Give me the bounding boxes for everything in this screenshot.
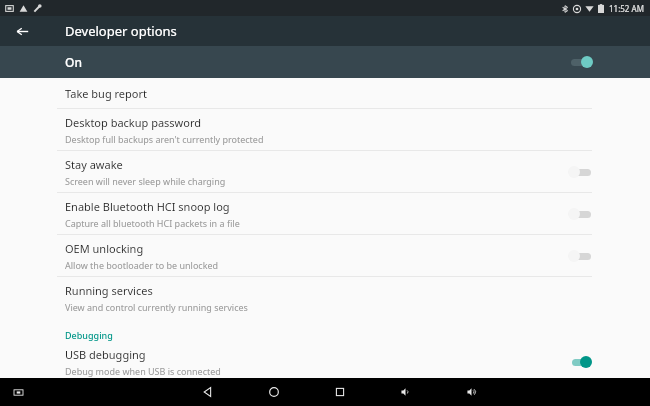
staticText: 11:52 AM — [609, 3, 644, 14]
button[interactable]: Back — [8, 17, 36, 45]
staticText: Debugging — [65, 329, 113, 341]
button[interactable]: OEM unlocking — [0, 235, 650, 276]
staticText: Enable Bluetooth HCI snoop log — [65, 199, 230, 214]
staticText: Take bug report — [65, 86, 147, 101]
staticText: Desktop backup password — [65, 115, 202, 130]
staticText: Developer options — [65, 22, 177, 40]
button[interactable]: USB debugging — [0, 345, 650, 378]
staticText: Screen will never sleep while charging — [65, 175, 226, 187]
button[interactable]: Enable Bluetooth HCI snoop log — [0, 193, 650, 234]
staticText: Running services — [65, 283, 153, 298]
staticText: Debug mode when USB is connected — [65, 365, 221, 377]
button[interactable]: Stay awake — [0, 151, 650, 192]
staticText: View and control currently running servi… — [65, 301, 248, 313]
staticText: Capture all bluetooth HCI packets in a f… — [65, 217, 240, 229]
button[interactable]: Home — [261, 379, 287, 405]
button[interactable]: Volume up — [459, 379, 485, 405]
button[interactable]: Running services — [0, 277, 650, 318]
staticText: Allow the bootloader to be unlocked — [65, 259, 219, 271]
staticText: Stay awake — [65, 157, 123, 172]
button[interactable]: Back — [195, 379, 221, 405]
button[interactable]: Take bug report — [0, 78, 650, 108]
button[interactable]: On — [0, 46, 650, 78]
staticText: OEM unlocking — [65, 241, 144, 256]
staticText: On — [65, 54, 568, 70]
staticText: USB debugging — [65, 347, 146, 362]
button[interactable]: Screenshot — [8, 382, 28, 402]
staticText: Desktop full backups aren't currently pr… — [65, 133, 264, 145]
button[interactable]: Volume down — [393, 379, 419, 405]
button[interactable]: Desktop backup password — [0, 109, 650, 150]
button[interactable]: Recents — [327, 379, 353, 405]
